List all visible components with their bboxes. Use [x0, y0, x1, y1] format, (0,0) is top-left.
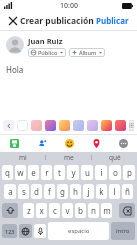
staticText: n — [91, 205, 96, 216]
button[interactable]: v — [62, 203, 73, 218]
staticText: b — [78, 205, 83, 216]
button[interactable]: j — [83, 184, 94, 199]
button[interactable]: Mayúsculas — [2, 203, 18, 218]
button[interactable]: espacio — [48, 222, 109, 240]
button[interactable]: d — [31, 184, 42, 199]
button[interactable]: Fondo de color — [59, 120, 70, 131]
button[interactable]: x — [36, 203, 47, 218]
button[interactable]: g — [57, 184, 68, 199]
button[interactable]: Fondo de color — [87, 120, 98, 131]
button[interactable]: Dictado — [34, 224, 46, 238]
button[interactable]: Sin fondo — [17, 120, 28, 131]
button[interactable]: u — [81, 165, 93, 180]
staticText: Crear publicación — [20, 15, 94, 27]
staticText: z — [27, 205, 31, 216]
staticText: Publicar — [96, 15, 129, 26]
button[interactable]: Atrás — [3, 120, 14, 131]
button[interactable]: c — [49, 203, 60, 218]
button[interactable]: qué — [92, 152, 137, 163]
button[interactable]: Más fondos — [129, 120, 134, 131]
staticText: e — [31, 167, 36, 178]
staticText: Hola — [6, 64, 24, 75]
button[interactable]: Fondo de color — [73, 120, 84, 131]
staticText: r — [45, 167, 49, 178]
button[interactable]: t — [54, 165, 65, 180]
button[interactable]: Etiquetar — [28, 135, 56, 152]
button[interactable]: mi — [0, 152, 45, 163]
button[interactable]: o — [109, 165, 121, 180]
staticText: w — [17, 167, 24, 178]
staticText: o — [113, 167, 118, 178]
button[interactable]: Fondo de color — [101, 120, 112, 131]
button[interactable]: Fondo de color — [31, 120, 42, 131]
button[interactable]: e — [28, 165, 39, 180]
staticText: 10:00 — [60, 1, 78, 11]
staticText: a — [8, 186, 13, 197]
button[interactable]: Fondo de color — [45, 120, 56, 131]
staticText: me — [64, 153, 74, 162]
staticText: Público — [38, 49, 58, 56]
button[interactable]: me — [46, 152, 91, 163]
button[interactable]: r — [41, 165, 52, 180]
button[interactable]: k — [96, 184, 107, 199]
staticText: Juan Ruiz — [28, 36, 63, 46]
staticText: s — [22, 186, 26, 197]
button[interactable]: Ubicación — [83, 135, 110, 152]
button[interactable]: Publicar — [94, 13, 131, 28]
button[interactable]: y — [67, 165, 79, 180]
staticText: p — [127, 167, 132, 178]
button[interactable]: intro — [111, 222, 135, 240]
staticText: 123 — [5, 228, 15, 235]
button[interactable]: ñ — [122, 184, 133, 199]
staticText: i — [100, 167, 103, 178]
staticText: qué — [109, 153, 121, 162]
button[interactable]: h — [70, 184, 81, 199]
button[interactable]: p — [123, 165, 135, 180]
button[interactable]: Álbum — [69, 48, 105, 57]
staticText: x — [39, 205, 44, 216]
button[interactable]: f — [44, 184, 55, 199]
button[interactable]: Borrar — [119, 203, 135, 218]
button[interactable]: z — [23, 203, 34, 218]
staticText: f — [48, 186, 51, 197]
button[interactable]: Sentimiento — [56, 135, 83, 152]
staticText: mi — [19, 153, 27, 162]
staticText: Álbum — [79, 49, 97, 56]
staticText: t — [58, 167, 61, 178]
button[interactable]: Público — [28, 48, 66, 57]
button[interactable]: Fotos — [0, 135, 28, 152]
button[interactable]: Números — [2, 224, 17, 238]
staticText: v — [65, 205, 70, 216]
button[interactable]: m — [101, 203, 112, 218]
staticText: espacio — [68, 227, 90, 235]
staticText: d — [34, 186, 39, 197]
staticText: h — [73, 186, 78, 197]
staticText: m — [103, 205, 111, 216]
staticText: q — [5, 167, 10, 178]
button[interactable]: Cerrar — [6, 14, 20, 28]
button[interactable]: Fondo de color — [115, 120, 126, 131]
button[interactable]: a — [4, 184, 16, 199]
staticText: y — [71, 167, 76, 178]
button[interactable]: Idioma — [19, 224, 32, 238]
staticText: u — [85, 167, 90, 178]
button[interactable]: b — [75, 203, 86, 218]
button[interactable]: l — [109, 184, 120, 199]
staticText: k — [99, 186, 104, 197]
staticText: c — [53, 205, 57, 216]
button[interactable]: w — [15, 165, 26, 180]
button[interactable]: Más — [110, 135, 137, 152]
button[interactable]: i — [95, 165, 107, 180]
button[interactable]: n — [88, 203, 99, 218]
staticText: l — [113, 186, 116, 197]
button[interactable]: q — [2, 165, 13, 180]
staticText: ñ — [125, 186, 130, 197]
staticText: intro — [116, 227, 130, 235]
button[interactable]: s — [18, 184, 29, 199]
staticText: j — [87, 186, 90, 197]
staticText: g — [60, 186, 65, 197]
